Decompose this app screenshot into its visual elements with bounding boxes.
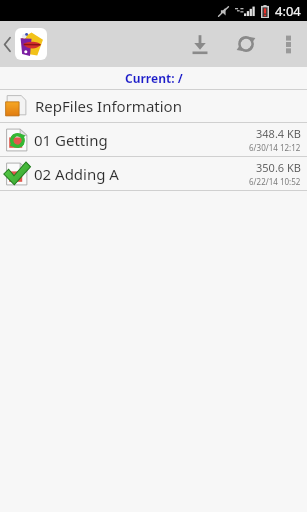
staticText: 01 Getting Started.pdf: [34, 130, 141, 150]
staticText: 350.6 KB: [256, 160, 301, 175]
button[interactable]: More options: [269, 21, 307, 67]
button[interactable]: Up: [0, 24, 53, 64]
button[interactable]: RepFiles Information: [0, 90, 307, 122]
staticText: Current: /: [125, 70, 183, 86]
staticText: 6/30/14 12:12: [249, 142, 301, 153]
staticText: RepFiles Information: [35, 96, 182, 116]
staticText: 348.4 KB: [256, 126, 301, 141]
staticText: 02 Adding A Plugin.pdf: [34, 164, 141, 184]
button[interactable]: Refresh: [223, 21, 269, 67]
button[interactable]: 01 Getting Started.pdf: [0, 123, 307, 156]
button[interactable]: 02 Adding A Plugin.pdf: [0, 157, 307, 190]
staticText: 6/22/14 10:52: [249, 176, 301, 187]
button[interactable]: Download: [177, 21, 223, 67]
staticText: 4:04: [275, 2, 301, 20]
